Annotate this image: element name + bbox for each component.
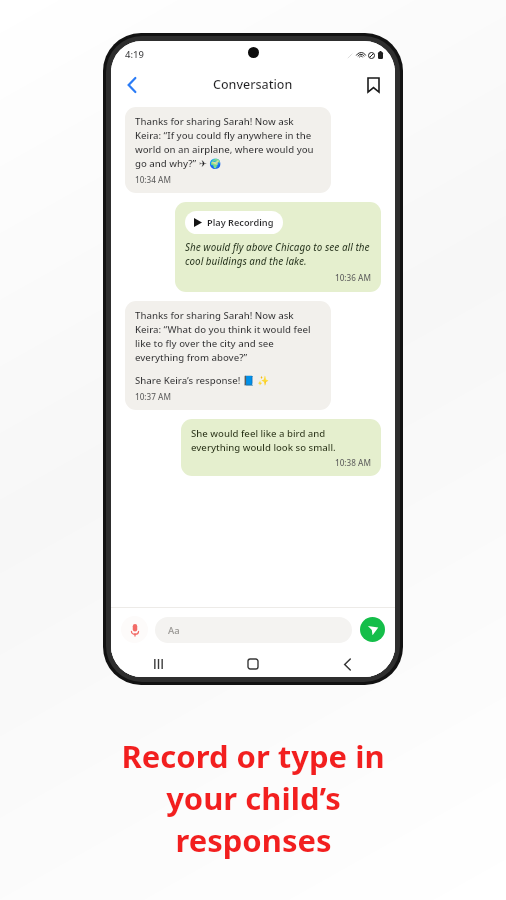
button[interactable]: Recent apps: [111, 651, 205, 677]
button[interactable]: Home: [205, 651, 300, 677]
staticText: Thanks for sharing Sarah! Now ask Keira:…: [135, 115, 321, 170]
button[interactable]: Back: [119, 72, 145, 98]
staticText: 10:36 AM: [335, 272, 371, 283]
button[interactable]: Aa: [155, 617, 352, 643]
staticText: Thanks for sharing Sarah! Now ask Keira:…: [135, 309, 321, 363]
staticText: your child’s: [166, 777, 341, 819]
button[interactable]: Record voice: [121, 616, 148, 643]
button[interactable]: Play Recording: [175, 202, 381, 292]
staticText: She would fly above Chicago to see all t…: [185, 241, 371, 268]
staticText: 10:37 AM: [135, 391, 171, 402]
staticText: Conversation: [213, 76, 293, 93]
staticText: Play Recording: [207, 216, 274, 229]
staticText: Aa: [168, 624, 180, 637]
staticText: 10:38 AM: [335, 457, 371, 468]
staticText: She would feel like a bird and everythin…: [191, 427, 371, 453]
staticText: responses: [175, 819, 332, 861]
button[interactable]: Bookmark: [360, 72, 386, 98]
staticText: 4:19: [125, 48, 144, 61]
button[interactable]: She would feel like a bird and everythin…: [181, 419, 381, 476]
button[interactable]: Thanks for sharing Sarah! Now ask Keira:…: [125, 301, 331, 410]
button[interactable]: Thanks for sharing Sarah! Now ask Keira:…: [125, 107, 331, 193]
button[interactable]: Back: [300, 651, 395, 677]
button[interactable]: Play Recording: [185, 211, 283, 234]
staticText: Share Keira’s response! 📘 ✨: [135, 374, 270, 387]
staticText: 10:34 AM: [135, 174, 171, 185]
button[interactable]: Send: [360, 617, 385, 642]
staticText: Record or type in: [121, 735, 385, 777]
